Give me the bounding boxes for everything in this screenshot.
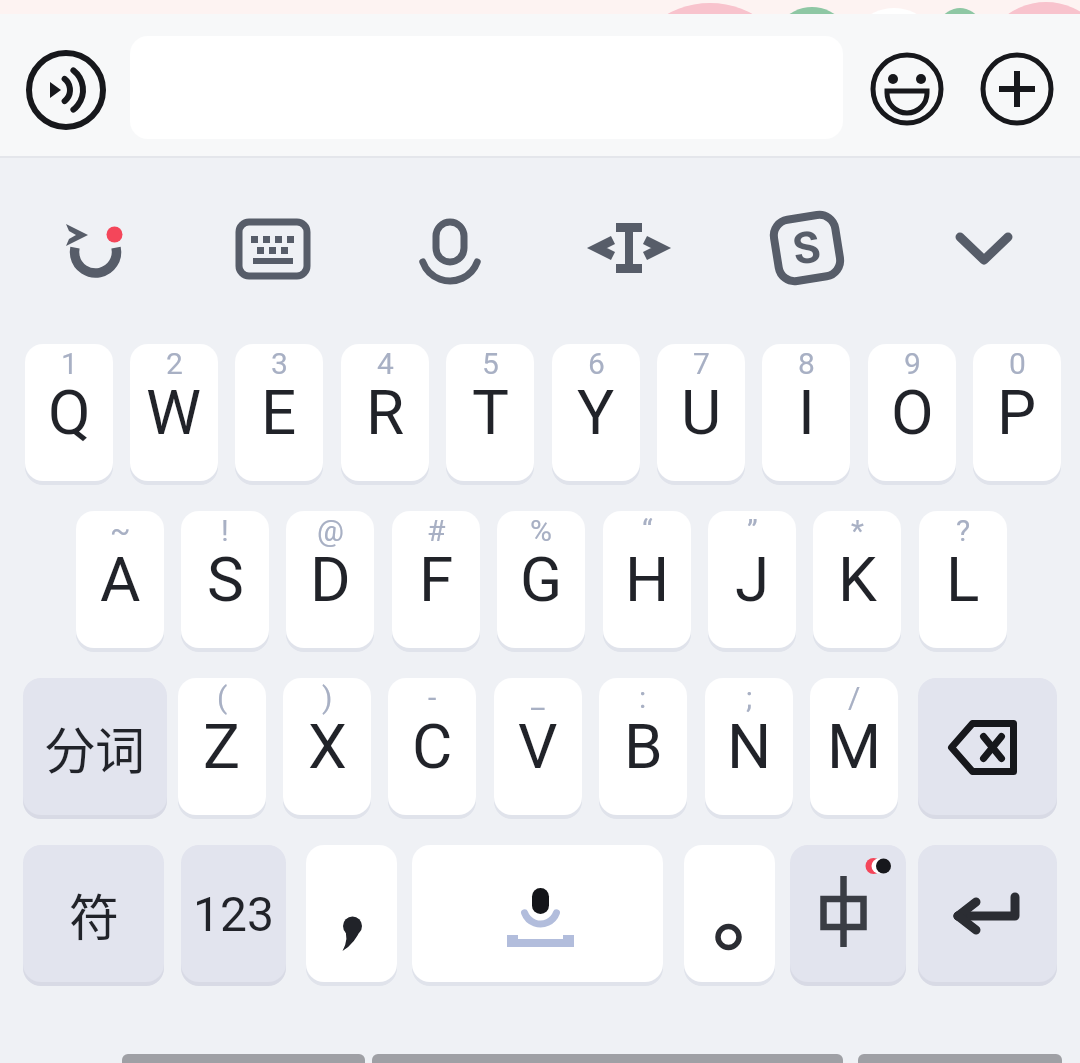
- button[interactable]: 123: [181, 845, 286, 982]
- staticText: R: [366, 376, 405, 449]
- button[interactable]: ?: [919, 511, 1007, 648]
- button[interactable]: 1: [25, 344, 113, 481]
- staticText: 1: [61, 346, 78, 381]
- staticText: X: [308, 710, 347, 783]
- staticText: ?: [956, 513, 971, 548]
- button[interactable]: [924, 188, 1044, 308]
- staticText: _: [531, 680, 545, 715]
- staticText: 符: [69, 878, 119, 950]
- staticText: N: [727, 710, 772, 783]
- staticText: B: [624, 710, 663, 783]
- button[interactable]: !: [181, 511, 269, 648]
- staticText: 6: [588, 346, 605, 381]
- staticText: W: [146, 376, 202, 449]
- button[interactable]: @: [286, 511, 374, 648]
- button[interactable]: [865, 47, 949, 131]
- button[interactable]: (: [178, 678, 266, 815]
- staticText: :: [639, 680, 647, 715]
- button[interactable]: :: [599, 678, 687, 815]
- button[interactable]: /: [810, 678, 898, 815]
- staticText: M: [827, 710, 882, 783]
- staticText: @: [317, 513, 344, 548]
- staticText: D: [310, 543, 351, 616]
- staticText: K: [838, 543, 877, 616]
- button[interactable]: 分词: [23, 678, 167, 815]
- staticText: G: [520, 543, 563, 616]
- staticText: 2: [166, 346, 183, 381]
- staticText: H: [625, 543, 670, 616]
- button[interactable]: [684, 845, 775, 982]
- staticText: U: [681, 376, 722, 449]
- staticText: #: [427, 513, 446, 548]
- button[interactable]: “: [603, 511, 691, 648]
- button[interactable]: [918, 678, 1057, 815]
- button[interactable]: 7: [657, 344, 745, 481]
- button[interactable]: [918, 845, 1057, 982]
- button[interactable]: [412, 845, 663, 982]
- button[interactable]: _: [494, 678, 582, 815]
- staticText: S: [789, 220, 825, 276]
- button[interactable]: ): [283, 678, 371, 815]
- staticText: -: [428, 680, 437, 715]
- button[interactable]: 4: [341, 344, 429, 481]
- staticText: ”: [747, 513, 758, 548]
- staticText: ~: [110, 513, 131, 548]
- button[interactable]: [213, 188, 333, 308]
- button[interactable]: 2: [130, 344, 218, 481]
- staticText: L: [946, 543, 980, 616]
- staticText: “: [642, 513, 653, 548]
- staticText: 0: [1009, 346, 1026, 381]
- button[interactable]: [16, 40, 116, 140]
- staticText: P: [997, 376, 1037, 449]
- staticText: T: [472, 376, 509, 449]
- staticText: (: [217, 680, 228, 715]
- staticText: Y: [577, 376, 615, 449]
- staticText: %: [530, 513, 552, 548]
- staticText: /: [848, 680, 861, 715]
- staticText: Q: [48, 376, 91, 449]
- button[interactable]: 8: [762, 344, 850, 481]
- staticText: *: [851, 513, 864, 548]
- button[interactable]: 0: [973, 344, 1061, 481]
- button[interactable]: S: [747, 188, 867, 308]
- staticText: C: [412, 710, 453, 783]
- staticText: E: [261, 376, 297, 449]
- button[interactable]: ;: [705, 678, 793, 815]
- staticText: F: [419, 543, 454, 616]
- staticText: 9: [904, 346, 921, 381]
- button[interactable]: [790, 845, 906, 982]
- staticText: O: [891, 376, 934, 449]
- button[interactable]: 3: [235, 344, 323, 481]
- staticText: S: [207, 543, 244, 616]
- staticText: V: [518, 710, 558, 783]
- staticText: ): [322, 680, 333, 715]
- button[interactable]: [390, 188, 510, 308]
- button[interactable]: ”: [708, 511, 796, 648]
- staticText: 分词: [45, 711, 145, 783]
- button[interactable]: -: [388, 678, 476, 815]
- staticText: 5: [482, 346, 499, 381]
- staticText: Z: [203, 710, 241, 783]
- staticText: A: [100, 543, 141, 616]
- staticText: 3: [271, 346, 288, 381]
- button[interactable]: 6: [552, 344, 640, 481]
- staticText: 7: [693, 346, 710, 381]
- staticText: 123: [193, 886, 274, 942]
- button[interactable]: [306, 845, 397, 982]
- button[interactable]: [569, 188, 689, 308]
- button[interactable]: [35, 188, 155, 308]
- staticText: 8: [798, 346, 815, 381]
- button[interactable]: #: [392, 511, 480, 648]
- staticText: I: [798, 376, 815, 449]
- button[interactable]: 9: [868, 344, 956, 481]
- button[interactable]: 5: [446, 344, 534, 481]
- button[interactable]: %: [497, 511, 585, 648]
- button[interactable]: [975, 47, 1059, 131]
- staticText: ;: [746, 680, 753, 715]
- button[interactable]: *: [813, 511, 901, 648]
- staticText: 4: [377, 346, 394, 381]
- staticText: !: [221, 513, 229, 548]
- button[interactable]: 符: [23, 845, 164, 982]
- button[interactable]: ~: [76, 511, 164, 648]
